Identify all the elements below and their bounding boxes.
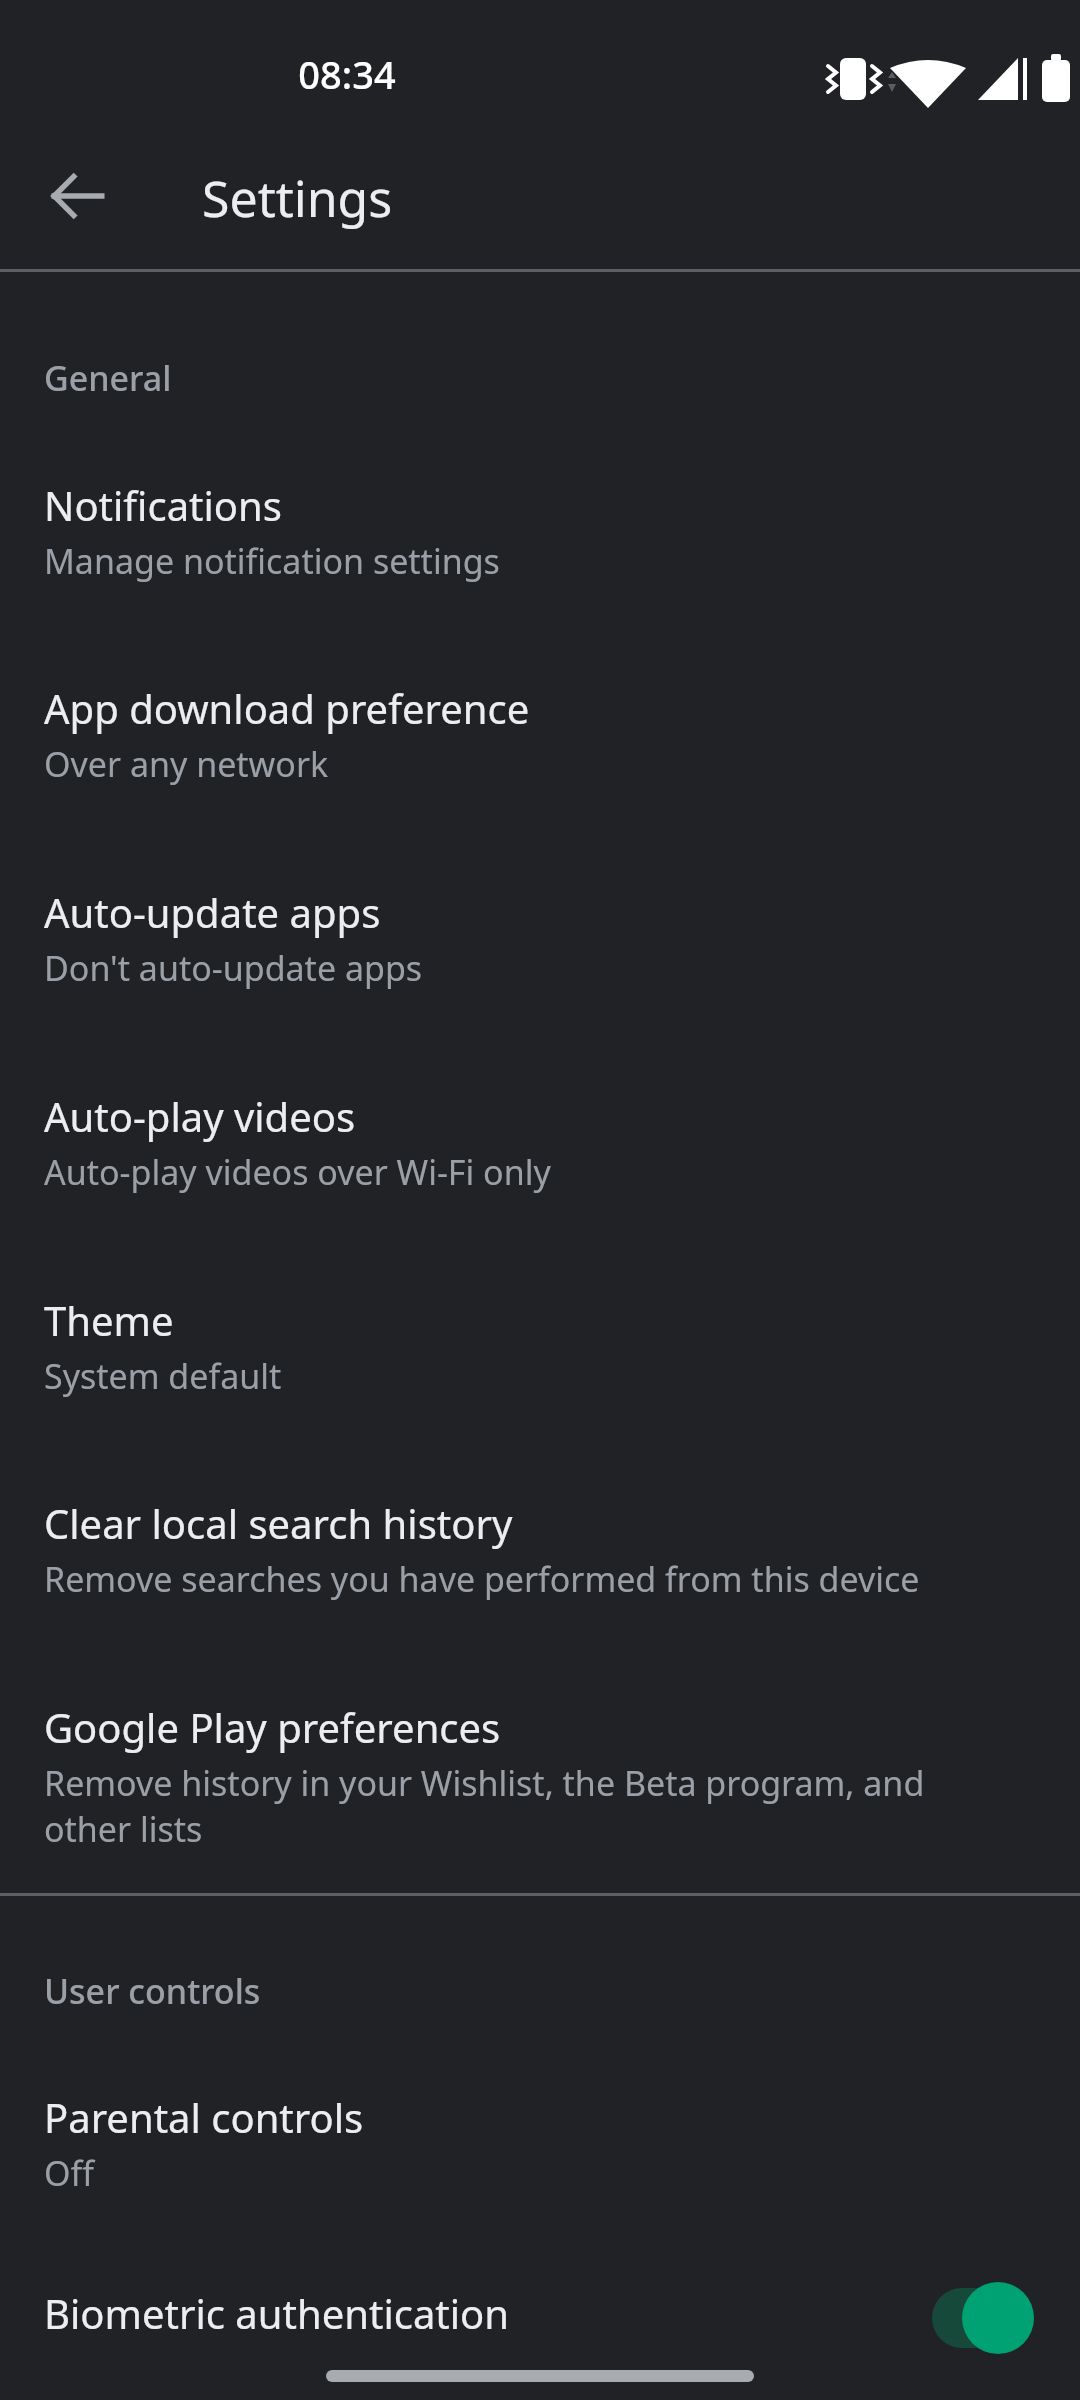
button[interactable]: App download preference xyxy=(0,673,1080,797)
staticText: Theme xyxy=(44,1293,174,1347)
button[interactable]: Clear local search history xyxy=(0,1488,1080,1612)
staticText: Auto-play videos xyxy=(44,1089,356,1143)
staticText: Manage notification settings xyxy=(44,538,500,584)
button[interactable]: Back xyxy=(30,148,126,244)
staticText: App download preference xyxy=(44,681,530,735)
staticText: Notifications xyxy=(44,478,282,532)
button[interactable]: Google Play preferences xyxy=(0,1692,1080,1862)
staticText: System default xyxy=(44,1353,282,1399)
staticText: Remove searches you have performed from … xyxy=(44,1556,920,1602)
staticText: Parental controls xyxy=(44,2090,364,2144)
staticText: User controls xyxy=(44,1968,261,2014)
staticText: General xyxy=(44,355,172,401)
button[interactable]: Notifications xyxy=(0,470,1080,594)
button[interactable]: Biometric authentication xyxy=(0,2280,1080,2400)
staticText: Auto-play videos over Wi-Fi only xyxy=(44,1149,551,1195)
staticText: Don't auto-update apps xyxy=(44,945,423,991)
staticText: Google Play preferences xyxy=(44,1700,501,1754)
staticText: Remove history in your Wishlist, the Bet… xyxy=(44,1760,1020,1852)
button[interactable]: Parental controls xyxy=(0,2082,1080,2206)
staticText: Biometric authentication xyxy=(44,2286,932,2340)
staticText: Off xyxy=(44,2150,94,2196)
staticText: Over any network xyxy=(44,741,329,787)
staticText: 08:34 xyxy=(247,48,447,100)
staticText: Settings xyxy=(202,164,393,232)
button[interactable]: Auto-update apps xyxy=(0,877,1080,1001)
button[interactable]: Auto-play videos xyxy=(0,1081,1080,1205)
staticText: Clear local search history xyxy=(44,1496,513,1550)
button[interactable]: Theme xyxy=(0,1285,1080,1409)
staticText: Auto-update apps xyxy=(44,885,381,939)
